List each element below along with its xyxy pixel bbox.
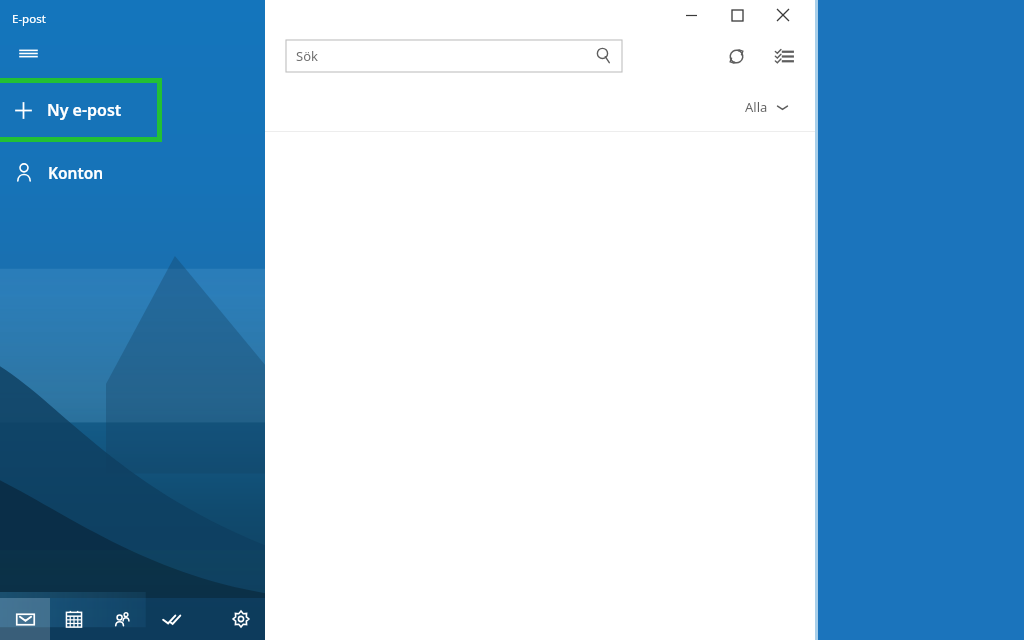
staticText: Ny e-post [47, 99, 122, 121]
button[interactable]: Maximize [714, 0, 760, 30]
button[interactable]: Settings [223, 598, 259, 640]
button[interactable]: Ny e-post [0, 83, 157, 137]
staticText: Alla [745, 98, 768, 116]
staticText: Konton [48, 162, 104, 183]
staticText: E-post [12, 11, 46, 27]
button[interactable]: Alla [745, 94, 789, 120]
staticText: Sök [296, 47, 318, 65]
button[interactable]: Menu [8, 34, 48, 72]
button[interactable]: Calendar [56, 598, 92, 640]
button[interactable]: Konton [0, 150, 265, 194]
button[interactable]: Sync [719, 41, 753, 71]
button[interactable]: Close [760, 0, 806, 30]
button[interactable]: To Do [153, 598, 189, 640]
button[interactable]: People [104, 598, 140, 640]
other: Search [586, 40, 620, 70]
button[interactable]: Selection mode [767, 41, 801, 71]
button[interactable]: Sök [286, 40, 622, 72]
button[interactable]: Mail [0, 598, 50, 640]
button[interactable]: Minimize [668, 0, 714, 30]
